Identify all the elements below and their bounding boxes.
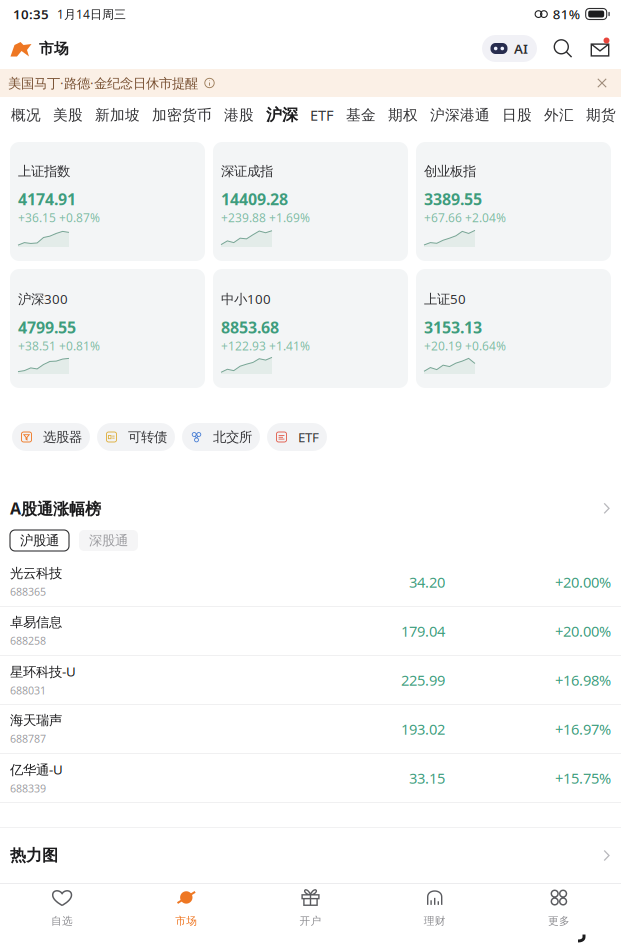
staticText: 日股 — [502, 106, 532, 124]
button[interactable]: 期权 — [382, 97, 424, 133]
staticText: 688031 — [10, 683, 46, 697]
staticText: 中小100 — [221, 290, 271, 308]
staticText: 期货 — [586, 106, 616, 124]
staticText: 沪股通 — [20, 532, 59, 549]
staticText: +20.19 +0.64% — [424, 338, 506, 354]
button[interactable]: 加密货币 — [146, 97, 218, 133]
staticText: 上证指数 — [18, 163, 70, 179]
staticText: +20.00% — [555, 621, 611, 641]
staticText: 33.15 — [409, 768, 445, 788]
button[interactable]: ETF — [267, 423, 327, 451]
button[interactable]: 自选 — [0, 884, 124, 930]
staticText: +16.98% — [555, 670, 611, 690]
staticText: 港股 — [224, 106, 254, 124]
button[interactable]: 亿华通-U — [0, 754, 621, 803]
button[interactable]: 创业板指 — [416, 142, 611, 261]
button[interactable]: 理财 — [373, 884, 497, 930]
button[interactable]: 上证50 — [416, 269, 611, 388]
staticText: 概况 — [11, 106, 41, 124]
staticText: 4174.91 — [18, 188, 76, 210]
staticText: 卓易信息 — [10, 614, 62, 631]
staticText: 688339 — [10, 781, 46, 795]
staticText: 34.20 — [409, 572, 445, 592]
staticText: 光云科技 — [10, 565, 62, 582]
staticText: A股通涨幅榜 — [10, 498, 101, 519]
staticText: 3153.13 — [424, 317, 482, 338]
button[interactable]: 卓易信息 — [0, 607, 621, 656]
staticText: 193.02 — [401, 719, 445, 739]
staticText: 自选 — [51, 914, 73, 927]
button[interactable]: AI — [482, 35, 537, 62]
staticText: 理财 — [424, 914, 446, 927]
staticText: 选股器 — [43, 429, 82, 445]
button[interactable]: 日股 — [496, 97, 538, 133]
button[interactable]: 沪股通 — [10, 530, 69, 551]
staticText: 4799.55 — [18, 317, 76, 338]
button[interactable]: 光云科技 — [0, 558, 621, 607]
staticText: ETF — [310, 105, 334, 125]
button[interactable]: 深证成指 — [213, 142, 408, 261]
staticText: 上证50 — [424, 290, 466, 308]
staticText: 1月14日周三 — [57, 6, 126, 22]
staticText: 热力图 — [10, 846, 58, 865]
staticText: 深股通 — [89, 532, 128, 549]
staticText: 北交所 — [213, 429, 252, 445]
staticText: 179.04 — [401, 621, 445, 641]
button[interactable]: 星环科技-U — [0, 656, 621, 705]
button[interactable]: 更多 — [497, 884, 621, 930]
staticText: 沪深300 — [18, 290, 68, 308]
button[interactable]: 沪深港通 — [424, 97, 496, 133]
staticText: ETF — [298, 428, 319, 446]
staticText: 225.99 — [401, 670, 445, 690]
staticText: +67.66 +2.04% — [424, 210, 506, 225]
staticText: +239.88 +1.69% — [221, 210, 310, 225]
button[interactable]: 沪深 — [260, 97, 304, 133]
button[interactable]: 开户 — [248, 884, 373, 930]
button[interactable]: 基金 — [340, 97, 382, 133]
staticText: AI — [514, 40, 528, 57]
staticText: +16.97% — [555, 719, 611, 739]
staticText: 688365 — [10, 585, 46, 599]
button[interactable]: 中小100 — [213, 269, 408, 388]
staticText: 美国马丁·路德·金纪念日休市提醒 — [8, 74, 198, 92]
staticText: 新加坡 — [95, 106, 140, 124]
staticText: 10:35 — [13, 5, 49, 23]
button[interactable]: 沪深300 — [10, 269, 205, 388]
button[interactable]: ETF — [304, 97, 340, 133]
button[interactable]: 新加坡 — [89, 97, 146, 133]
staticText: 688258 — [10, 634, 46, 648]
staticText: 创业板指 — [424, 163, 476, 179]
button[interactable]: 市场 — [124, 884, 248, 930]
button[interactable]: 外汇 — [538, 97, 580, 133]
button[interactable]: 热力图 — [0, 828, 621, 883]
button[interactable]: 深股通 — [79, 530, 138, 551]
staticText: 星环科技-U — [10, 663, 76, 680]
button[interactable]: 选股器 — [12, 423, 90, 451]
staticText: 8853.68 — [221, 317, 279, 338]
staticText: 14409.28 — [221, 188, 288, 210]
staticText: 加密货币 — [152, 106, 212, 124]
button[interactable]: 美股 — [47, 97, 89, 133]
button[interactable]: 港股 — [218, 97, 260, 133]
button[interactable]: 期货 — [580, 97, 621, 133]
button[interactable]: 概况 — [5, 97, 47, 133]
staticText: 开户 — [299, 914, 321, 927]
staticText: 美股 — [53, 106, 83, 124]
staticText: 更多 — [548, 914, 570, 927]
staticText: +20.00% — [555, 572, 611, 592]
button[interactable]: 上证指数 — [10, 142, 205, 261]
staticText: +36.15 +0.87% — [18, 210, 100, 225]
button[interactable]: 可转债 — [97, 423, 175, 451]
button[interactable]: 北交所 — [182, 423, 260, 451]
staticText: 外汇 — [544, 106, 574, 124]
button[interactable]: 海天瑞声 — [0, 705, 621, 754]
button[interactable]: Search — [551, 36, 575, 60]
staticText: 期权 — [388, 106, 418, 124]
staticText: +38.51 +0.81% — [18, 338, 100, 354]
staticText: 深证成指 — [221, 163, 273, 179]
button[interactable]: A股通涨幅榜 — [0, 451, 621, 523]
button[interactable]: Dismiss — [591, 72, 613, 94]
staticText: 81% — [553, 5, 580, 23]
button[interactable]: Messages — [589, 36, 611, 60]
staticText: 市场 — [39, 39, 69, 57]
